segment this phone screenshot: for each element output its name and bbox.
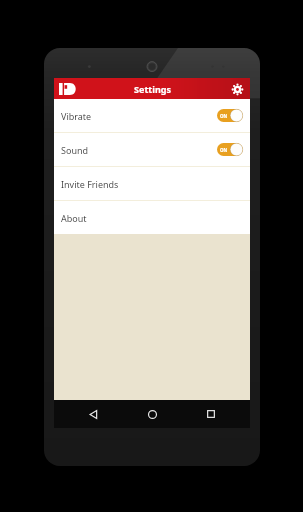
button[interactable]: Back	[73, 400, 113, 428]
button[interactable]: Vibrate	[54, 99, 250, 132]
button[interactable]: Sound	[54, 133, 250, 166]
button[interactable]: Toggle on	[217, 143, 243, 156]
staticText: Vibrate	[61, 110, 217, 122]
button[interactable]: About	[54, 201, 250, 234]
staticText: Settings	[134, 83, 171, 95]
button[interactable]: Invite Friends	[54, 167, 250, 200]
staticText: About	[61, 212, 243, 224]
button[interactable]: Settings	[229, 81, 245, 97]
staticText: ON	[220, 147, 228, 153]
button[interactable]: App logo	[58, 82, 78, 96]
button[interactable]: Toggle on	[217, 109, 243, 122]
staticText: ON	[220, 113, 228, 119]
staticText: Invite Friends	[61, 178, 243, 190]
button[interactable]: Recent apps	[191, 400, 231, 428]
button[interactable]: Home	[132, 400, 172, 428]
staticText: Sound	[61, 144, 217, 156]
